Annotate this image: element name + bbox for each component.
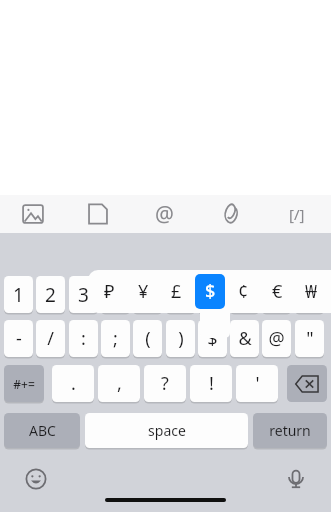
staticText: #+= (13, 376, 35, 392)
button[interactable]: ) (166, 320, 195, 357)
staticText: £ (171, 279, 182, 304)
staticText: 1 (13, 282, 24, 308)
button[interactable]: - (4, 320, 33, 357)
button[interactable]: Mention (148, 198, 180, 230)
button[interactable]: ( (133, 320, 162, 357)
button[interactable]: £ (161, 274, 191, 309)
button[interactable]: Photos (17, 198, 49, 230)
staticText: $ (205, 279, 216, 304)
button[interactable]: ₽ (94, 274, 124, 309)
staticText: - (16, 326, 22, 351)
button[interactable]: Code (281, 198, 313, 230)
staticText: 6 (175, 282, 186, 308)
button[interactable]: ¥ (128, 274, 158, 309)
button[interactable]: 1 (4, 276, 33, 313)
button[interactable]: ₩ (296, 274, 326, 309)
button[interactable]: / (36, 320, 65, 357)
button[interactable]: GIF (82, 198, 114, 230)
staticText: @ (268, 326, 285, 351)
staticText: ₽ (104, 279, 115, 304)
staticText: ' (255, 371, 260, 396)
staticText: ; (113, 326, 118, 351)
button[interactable]: : (69, 320, 98, 357)
button[interactable]: $ (195, 274, 225, 309)
button[interactable]: 8 (230, 276, 259, 313)
staticText: ? (161, 371, 169, 396)
button[interactable]: $ (198, 320, 227, 357)
button[interactable]: Delete (287, 365, 327, 402)
staticText: , (117, 371, 122, 396)
staticText: ¢ (238, 279, 249, 304)
button[interactable]: ' (236, 365, 278, 402)
staticText: " (306, 326, 314, 351)
staticText: : (81, 326, 86, 351)
button[interactable]: Dictation (280, 463, 312, 495)
staticText: & (238, 326, 252, 351)
staticText: ) (178, 326, 184, 351)
staticText: ! (209, 371, 214, 396)
button[interactable]: 7 (198, 276, 227, 313)
button[interactable]: #+= (4, 365, 44, 402)
staticText: € (272, 279, 283, 304)
button[interactable]: Emoji (20, 463, 52, 495)
button[interactable]: 0 (295, 276, 324, 313)
button[interactable]: @ (262, 320, 291, 357)
staticText: return (269, 421, 311, 440)
button[interactable]: 3 (69, 276, 98, 313)
button[interactable]: . (52, 365, 94, 402)
button[interactable]: ¢ (228, 274, 258, 309)
staticText: 9 (271, 282, 282, 308)
button[interactable]: " (295, 320, 324, 357)
button[interactable]: , (98, 365, 140, 402)
staticText: $ (207, 326, 218, 351)
button[interactable]: 9 (262, 276, 291, 313)
staticText: 2 (45, 282, 56, 308)
button[interactable]: ? (144, 365, 186, 402)
staticText: space (148, 421, 186, 440)
staticText: 3 (78, 282, 89, 308)
staticText: . (71, 371, 76, 396)
button[interactable]: & (230, 320, 259, 357)
staticText: ABC (29, 421, 56, 440)
staticText: 8 (239, 282, 250, 308)
staticText: 7 (207, 282, 218, 308)
button[interactable]: space (85, 413, 248, 448)
staticText: ¥ (138, 279, 149, 304)
button[interactable]: Attach file (215, 198, 247, 230)
button[interactable]: ; (101, 320, 130, 357)
staticText: 4 (110, 282, 121, 308)
staticText: / (47, 326, 54, 351)
staticText: ₩ (305, 279, 318, 304)
button[interactable]: ! (190, 365, 232, 402)
button[interactable]: return (253, 413, 327, 448)
button[interactable]: 4 (101, 276, 130, 313)
staticText: @ (155, 200, 174, 229)
staticText: ( (145, 326, 151, 351)
staticText: 5 (142, 282, 153, 308)
button[interactable]: 6 (166, 276, 195, 313)
staticText: [/] (289, 204, 305, 224)
button[interactable]: € (262, 274, 292, 309)
button[interactable]: 5 (133, 276, 162, 313)
button[interactable]: ABC (4, 413, 80, 448)
staticText: 0 (304, 282, 315, 308)
button[interactable]: 2 (36, 276, 65, 313)
